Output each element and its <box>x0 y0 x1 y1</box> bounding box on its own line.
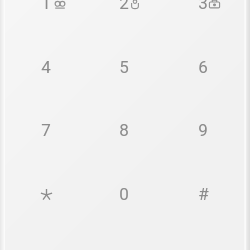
staticText: 9 <box>198 120 208 140</box>
staticText: 7 <box>41 120 51 140</box>
button[interactable]: 8 <box>85 101 163 159</box>
button[interactable]: 5 <box>85 38 163 96</box>
button[interactable]: 7 <box>7 101 85 159</box>
staticText: 2 <box>119 0 129 13</box>
button[interactable] <box>7 165 85 223</box>
staticText: 8 <box>119 120 129 140</box>
button[interactable]: 6 <box>164 38 242 96</box>
button[interactable]: # <box>164 165 242 223</box>
other: Voicemail <box>55 0 65 10</box>
button[interactable]: 3 <box>164 0 242 32</box>
other: Contacts <box>130 0 140 10</box>
button[interactable]: 4 <box>7 38 85 96</box>
staticText: 1 <box>41 0 51 13</box>
button[interactable]: 2 <box>85 0 163 32</box>
staticText: 3 <box>198 0 208 13</box>
staticText: 5 <box>119 57 129 77</box>
other: Emergency <box>209 0 220 10</box>
staticText: 4 <box>41 57 51 77</box>
staticText: 6 <box>198 57 208 77</box>
button[interactable]: 1 <box>7 0 85 32</box>
staticText: 0 <box>119 184 129 204</box>
staticText: # <box>198 184 209 204</box>
button[interactable]: 9 <box>164 101 242 159</box>
button[interactable]: 0 <box>85 165 163 223</box>
